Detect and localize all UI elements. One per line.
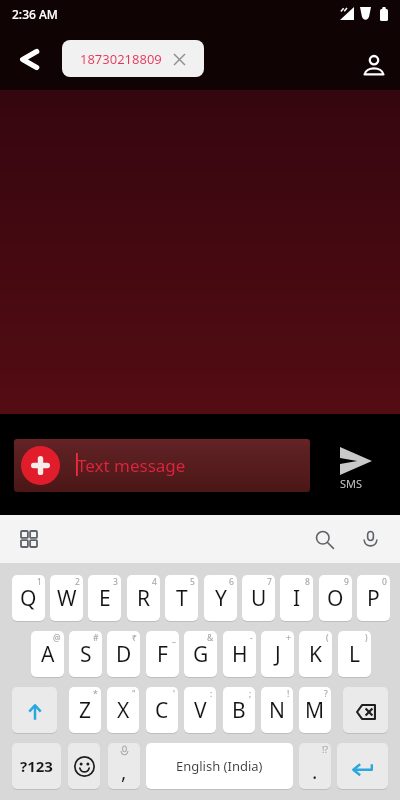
button[interactable]: A <box>31 631 64 677</box>
staticText: B <box>232 696 246 725</box>
button[interactable]: Contact details <box>350 41 398 89</box>
button[interactable]: 18730218809 <box>62 40 204 77</box>
staticText: D <box>116 640 132 669</box>
button[interactable]: O <box>319 575 352 621</box>
staticText: ' <box>173 688 175 700</box>
staticText: 8 <box>305 576 310 588</box>
staticText: _ <box>172 632 176 644</box>
staticText: C <box>155 696 169 725</box>
staticText: 5 <box>190 576 195 588</box>
staticText: English (India) <box>176 757 263 775</box>
staticText: - <box>250 632 253 644</box>
staticText: Y <box>215 584 227 613</box>
staticText: 9 <box>344 576 349 588</box>
staticText: . <box>312 758 318 785</box>
staticText: Q <box>20 584 37 613</box>
button[interactable]: V <box>184 687 216 733</box>
staticText: W <box>57 584 77 613</box>
button[interactable]: Keyboard toolbar <box>11 521 47 557</box>
staticText: E <box>99 584 111 613</box>
staticText: 6 <box>229 576 234 588</box>
button[interactable]: Y <box>204 575 237 621</box>
button[interactable]: G <box>184 631 217 677</box>
button[interactable]: U <box>242 575 275 621</box>
staticText: N <box>269 696 285 725</box>
button[interactable]: J <box>261 631 294 677</box>
button[interactable]: K <box>299 631 332 677</box>
staticText: G <box>193 640 209 669</box>
staticText: H <box>232 640 248 669</box>
button[interactable]: I <box>280 575 313 621</box>
staticText: A <box>41 640 55 669</box>
staticText: ₹ <box>132 632 137 644</box>
staticText: 0 <box>382 576 387 588</box>
button[interactable]: B <box>223 687 255 733</box>
button[interactable]: Backspace <box>343 687 388 733</box>
button[interactable]: P <box>357 575 390 621</box>
button[interactable]: Q <box>12 575 45 621</box>
staticText: SMS <box>340 476 363 491</box>
staticText: 2 <box>75 576 80 588</box>
button[interactable]: W <box>50 575 83 621</box>
button[interactable]: Shift <box>12 687 57 733</box>
staticText: ; <box>249 688 252 700</box>
staticText: 2:36 AM <box>12 6 58 22</box>
staticText: Text message <box>77 454 186 477</box>
button[interactable]: Voice input <box>352 521 388 557</box>
staticText: 7 <box>267 576 272 588</box>
button[interactable]: Z <box>69 687 101 733</box>
button[interactable]: H <box>223 631 256 677</box>
button[interactable]: Add attachment <box>21 446 60 485</box>
staticText: U <box>251 584 267 613</box>
staticText: M <box>305 696 325 725</box>
button[interactable]: Send SMS <box>322 440 390 500</box>
staticText: # <box>93 632 99 644</box>
staticText: Z <box>79 696 92 725</box>
staticText: J <box>275 640 281 669</box>
staticText: L <box>349 640 361 669</box>
button[interactable]: Comma <box>108 743 140 789</box>
button[interactable]: E <box>88 575 121 621</box>
staticText: X <box>117 696 130 725</box>
staticText: T <box>176 584 188 613</box>
button[interactable]: Search <box>306 521 342 557</box>
staticText: K <box>309 640 322 669</box>
staticText: * <box>93 688 98 700</box>
button[interactable]: Add attachment <box>14 439 310 492</box>
button[interactable]: M <box>299 687 331 733</box>
staticText: ? <box>324 688 328 700</box>
staticText: @ <box>53 632 61 644</box>
staticText: ?123 <box>20 756 53 776</box>
staticText: P <box>367 584 380 613</box>
staticText: I <box>293 584 301 613</box>
staticText: ! <box>287 688 290 700</box>
button[interactable]: Remove recipient <box>165 45 193 73</box>
button[interactable]: English (India) <box>146 743 293 789</box>
staticText: !? <box>322 744 328 756</box>
button[interactable]: C <box>146 687 178 733</box>
staticText: & <box>207 632 214 644</box>
staticText: + <box>286 632 291 644</box>
button[interactable]: Emoji <box>68 743 100 789</box>
staticText: 3 <box>113 576 118 588</box>
button[interactable]: ?123 <box>12 743 61 789</box>
staticText: 4 <box>152 576 157 588</box>
staticText: 1 <box>37 576 42 588</box>
button[interactable]: T <box>165 575 198 621</box>
staticText: R <box>137 584 151 613</box>
button[interactable]: Back <box>5 35 53 83</box>
button[interactable]: L <box>338 631 371 677</box>
button[interactable]: X <box>107 687 139 733</box>
button[interactable]: S <box>69 631 102 677</box>
staticText: " <box>132 688 136 700</box>
button[interactable]: R <box>127 575 160 621</box>
staticText: 18730218809 <box>80 50 162 68</box>
staticText: ( <box>326 632 329 644</box>
button[interactable]: D <box>107 631 140 677</box>
button[interactable]: Enter <box>337 743 388 789</box>
staticText: F <box>157 640 168 669</box>
button[interactable]: N <box>261 687 293 733</box>
button[interactable]: Period <box>299 743 331 789</box>
staticText: , <box>121 758 127 785</box>
button[interactable]: F <box>146 631 179 677</box>
